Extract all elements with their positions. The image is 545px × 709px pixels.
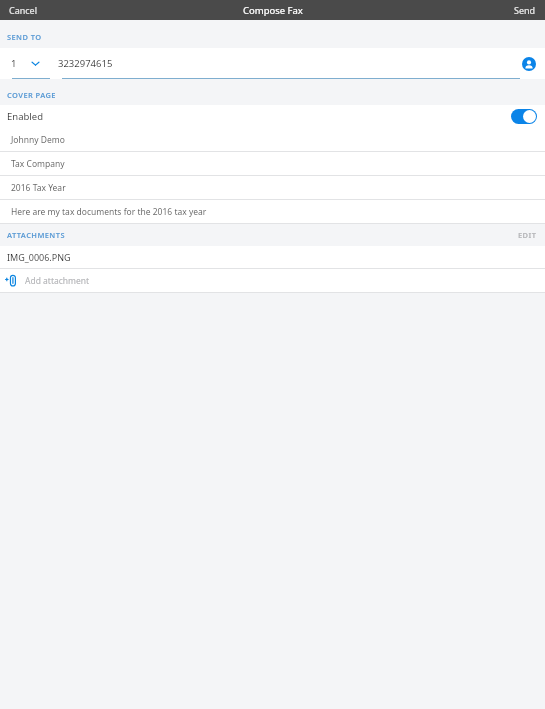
button[interactable]: Enabled: [0, 105, 545, 128]
button[interactable]: 1: [0, 48, 50, 79]
button[interactable]: Cancel: [0, 1, 47, 19]
button[interactable]: 3232974615: [50, 48, 513, 79]
staticText: Compose Fax: [243, 4, 303, 17]
staticText: IMG_0006.PNG: [7, 251, 71, 263]
button[interactable]: IMG_0006.PNG: [0, 246, 545, 268]
staticText: 3232974615: [58, 57, 113, 70]
button[interactable]: Tax Company: [0, 152, 545, 175]
staticText: COVER PAGE: [7, 90, 56, 100]
staticText: 1: [11, 57, 17, 70]
staticText: Send: [514, 4, 536, 16]
button[interactable]: EDIT: [510, 226, 545, 244]
staticText: SEND TO: [7, 32, 42, 42]
button[interactable]: Send: [505, 1, 545, 19]
staticText: Tax Company: [11, 158, 65, 170]
staticText: Johnny Demo: [11, 134, 65, 146]
button[interactable]: Johnny Demo: [0, 128, 545, 151]
staticText: ATTACHMENTS: [7, 230, 65, 240]
staticText: Here are my tax documents for the 2016 t…: [11, 206, 207, 218]
button[interactable]: Add attachment: [0, 269, 545, 292]
button[interactable]: 2016 Tax Year: [0, 176, 545, 199]
staticText: Enabled: [7, 110, 43, 123]
staticText: Add attachment: [25, 275, 90, 287]
button[interactable]: Choose contact: [513, 48, 545, 79]
staticText: Cancel: [9, 4, 38, 16]
staticText: EDIT: [518, 230, 537, 240]
button[interactable]: Here are my tax documents for the 2016 t…: [0, 200, 545, 223]
staticText: 2016 Tax Year: [11, 182, 66, 194]
button[interactable]: Cover page enabled: [511, 109, 537, 124]
